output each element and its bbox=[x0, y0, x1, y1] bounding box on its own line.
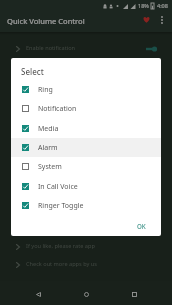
staticText: Notification bbox=[38, 104, 77, 114]
staticText: Ring bbox=[38, 85, 53, 95]
button[interactable]: Ringer Toggle bbox=[11, 196, 161, 215]
button[interactable]: Toggle notification bbox=[143, 44, 159, 54]
button[interactable]: Favorite bbox=[139, 12, 154, 27]
staticText: Select bbox=[21, 66, 44, 77]
button[interactable]: Home bbox=[76, 284, 96, 304]
staticText: OK bbox=[137, 222, 146, 230]
staticText: Check out more apps by us bbox=[26, 260, 97, 268]
button[interactable]: System bbox=[11, 157, 161, 176]
button[interactable]: Ring bbox=[11, 80, 161, 99]
button[interactable]: Enable notification bbox=[0, 40, 172, 58]
button[interactable]: In Call Voice bbox=[11, 177, 161, 196]
button[interactable]: Recents bbox=[124, 284, 144, 304]
staticText: 4:08 bbox=[157, 2, 168, 9]
staticText: Media bbox=[38, 124, 59, 134]
staticText: System bbox=[38, 162, 62, 172]
button[interactable]: OK bbox=[11, 214, 161, 236]
button[interactable]: Check out more apps by us bbox=[0, 256, 172, 274]
button[interactable]: Back bbox=[28, 284, 48, 304]
staticText: In Call Voice bbox=[38, 182, 78, 192]
staticText: Quick Volume Control bbox=[7, 16, 85, 26]
staticText: 18% bbox=[138, 2, 149, 9]
staticText: Ringer Toggle bbox=[38, 201, 84, 211]
staticText: Enable notification bbox=[26, 44, 75, 52]
button[interactable]: Alarm bbox=[11, 138, 161, 157]
button[interactable]: Media bbox=[11, 119, 161, 138]
button[interactable]: If you like, please rate app bbox=[0, 238, 172, 256]
staticText: If you like, please rate app bbox=[26, 242, 95, 250]
button[interactable]: Notification bbox=[11, 99, 161, 118]
staticText: Alarm bbox=[38, 143, 58, 153]
button[interactable]: More options bbox=[154, 12, 169, 27]
